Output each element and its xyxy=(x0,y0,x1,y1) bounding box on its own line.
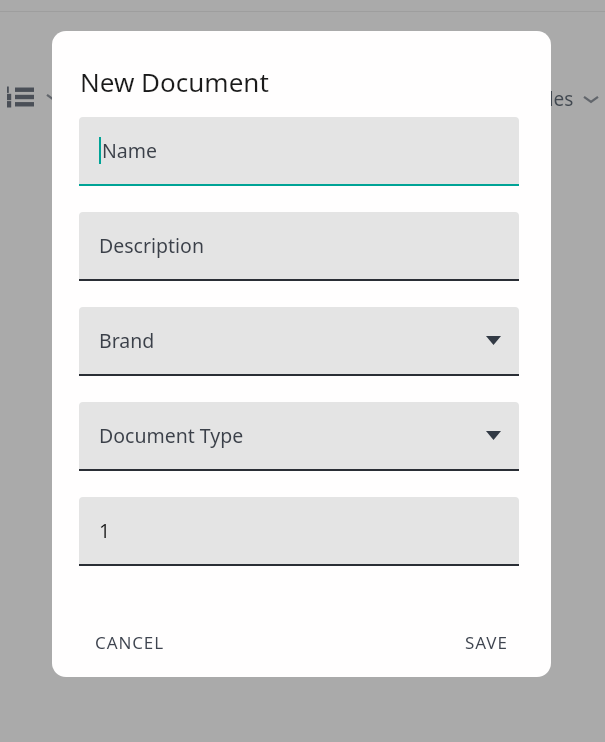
button[interactable]: 1 xyxy=(79,497,519,566)
button[interactable]: List style xyxy=(2,78,66,116)
staticText: bles xyxy=(537,86,574,112)
staticText: Document Type xyxy=(99,422,244,449)
button[interactable]: Document Type xyxy=(79,402,519,471)
button[interactable]: CANCEL xyxy=(79,621,181,664)
button[interactable]: Description xyxy=(79,212,519,281)
staticText: Name xyxy=(102,137,157,164)
button[interactable]: bles xyxy=(531,80,605,118)
staticText: CANCEL xyxy=(95,631,165,654)
button[interactable]: Name xyxy=(79,117,519,186)
button[interactable]: SAVE xyxy=(449,621,524,664)
staticText: 1 xyxy=(99,517,111,544)
staticText: New Document xyxy=(80,64,269,99)
button[interactable]: Brand xyxy=(79,307,519,376)
staticText: Brand xyxy=(99,327,155,354)
staticText: SAVE xyxy=(465,631,508,654)
staticText: Description xyxy=(99,232,204,259)
